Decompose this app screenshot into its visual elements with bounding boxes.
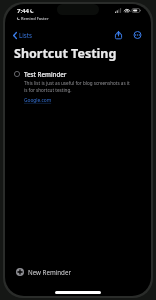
button[interactable]: Lists — [5, 29, 36, 41]
staticText: is for shortcut testing. — [24, 87, 72, 93]
button[interactable]: More options — [130, 28, 145, 42]
staticText: Shortcut Testing — [14, 45, 117, 62]
staticText: Google.com — [24, 97, 52, 104]
button[interactable]: New Reminder — [5, 262, 151, 282]
staticText: Test Reminder — [24, 70, 67, 78]
button[interactable]: Google.com — [24, 97, 52, 104]
staticText: New Reminder — [28, 268, 71, 276]
staticText: Remind Faster — [21, 16, 49, 21]
staticText: 7:44 — [17, 7, 29, 15]
button[interactable]: Share — [112, 28, 125, 42]
staticText: This list is just as useful for blog scr… — [24, 80, 130, 86]
button[interactable]: Test Reminder — [5, 68, 151, 106]
staticText: Lists — [19, 31, 32, 39]
